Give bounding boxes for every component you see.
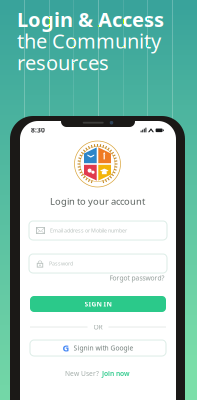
staticText: OR [93, 323, 102, 331]
button[interactable]: Forgot password? [108, 274, 166, 282]
staticText: Email address or Mobile number [50, 227, 127, 234]
staticText: Login & Access [17, 6, 164, 33]
staticText: Join now [102, 369, 130, 378]
staticText: 8:30 [31, 126, 45, 134]
staticText: the Community [17, 28, 161, 54]
button[interactable]: Join now [102, 369, 130, 378]
staticText: New User? [65, 369, 99, 378]
staticText: Password [49, 260, 73, 267]
staticText: resources [17, 49, 109, 76]
button[interactable]: SIGN IN [30, 296, 166, 312]
button[interactable]: G [30, 340, 166, 356]
staticText: G [62, 342, 69, 354]
staticText: Login to your account [50, 195, 145, 207]
staticText: Forgot password? [109, 274, 164, 282]
staticText: Signin with Google [73, 344, 133, 352]
staticText: SIGN IN [84, 300, 111, 308]
